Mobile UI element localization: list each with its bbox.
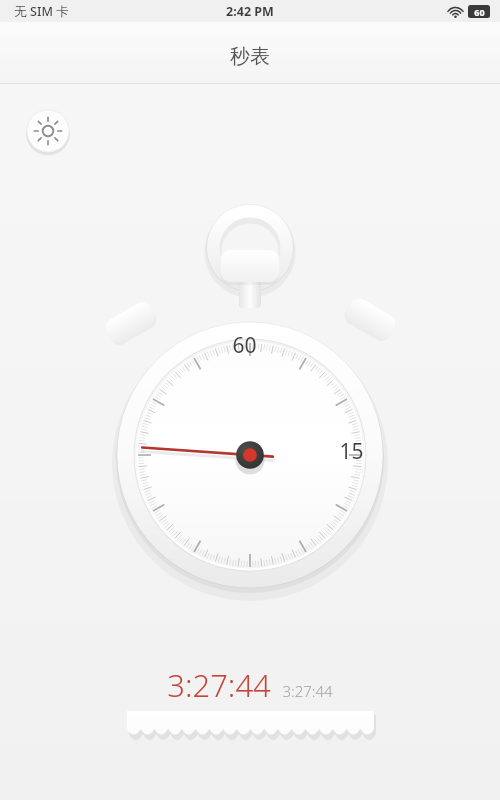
staticText: 秒表 [230,44,270,69]
staticText: 2:42 PM [226,3,274,20]
staticText: 无 SIM 卡 [14,3,69,20]
button[interactable]: Stopwatch dial [0,0,500,800]
staticText: 3:27:44 [282,681,333,701]
staticText: 3:27:44 [167,664,271,706]
staticText: 15 [339,437,364,466]
button[interactable]: Brightness [26,109,70,153]
staticText: 60 [232,331,257,360]
staticText: 60 [474,6,485,18]
